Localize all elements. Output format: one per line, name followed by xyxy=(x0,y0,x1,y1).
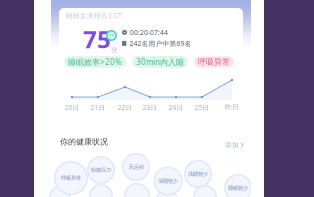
staticText: 25日 xyxy=(194,103,209,112)
button[interactable]: 健康指标 xyxy=(193,185,217,197)
button[interactable]: 健康指标 xyxy=(124,183,150,197)
staticText: 23日 xyxy=(142,103,157,112)
staticText: 24日 xyxy=(168,103,183,112)
staticText: 添加 xyxy=(225,141,239,149)
button[interactable]: 浅睡较少 xyxy=(184,160,212,188)
staticText: 30min内入睡 xyxy=(136,57,184,67)
button[interactable]: 健康指标 xyxy=(156,189,178,197)
staticText: 昨日 xyxy=(225,103,239,111)
staticText: 睡眠效率>20% xyxy=(68,57,122,67)
button[interactable]: 呼吸异常 xyxy=(54,161,88,195)
staticText: 21日 xyxy=(90,103,105,112)
staticText: 分 xyxy=(111,46,118,54)
button[interactable]: 无运动 xyxy=(122,153,150,181)
button[interactable]: 睡眠较少 xyxy=(224,174,252,197)
staticText: 浅睡较少 xyxy=(188,171,208,177)
button[interactable]: 添加 xyxy=(223,139,245,151)
staticText: 20日 xyxy=(64,103,79,112)
button[interactable]: 健康指标 xyxy=(89,184,113,197)
button[interactable]: 深睡较少 xyxy=(153,166,182,195)
staticText: 00:20-07:44 xyxy=(130,28,168,37)
staticText: 深睡较少 xyxy=(158,178,178,184)
staticText: 242名用户中第69名 xyxy=(129,39,191,48)
staticText: 睡眠较少 xyxy=(228,185,248,191)
staticText: 呼吸异常 xyxy=(198,57,230,67)
staticText: 呼吸异常 xyxy=(61,175,81,181)
staticText: 22日 xyxy=(117,103,132,112)
staticText: 无运动 xyxy=(128,164,143,170)
button[interactable]: 30min内入睡 xyxy=(132,56,188,68)
button[interactable]: 轻微压力 xyxy=(87,156,115,184)
staticText: 轻微压力 xyxy=(91,167,111,173)
button[interactable]: 呼吸异常 xyxy=(194,56,234,67)
staticText: 75 xyxy=(83,23,111,55)
button[interactable]: 健康指标 xyxy=(49,186,71,197)
staticText: 睡眠监测报告2.0T xyxy=(66,11,122,20)
staticText: 你的健康状况 xyxy=(60,137,108,147)
button[interactable]: 睡眠效率>20% xyxy=(64,56,126,68)
